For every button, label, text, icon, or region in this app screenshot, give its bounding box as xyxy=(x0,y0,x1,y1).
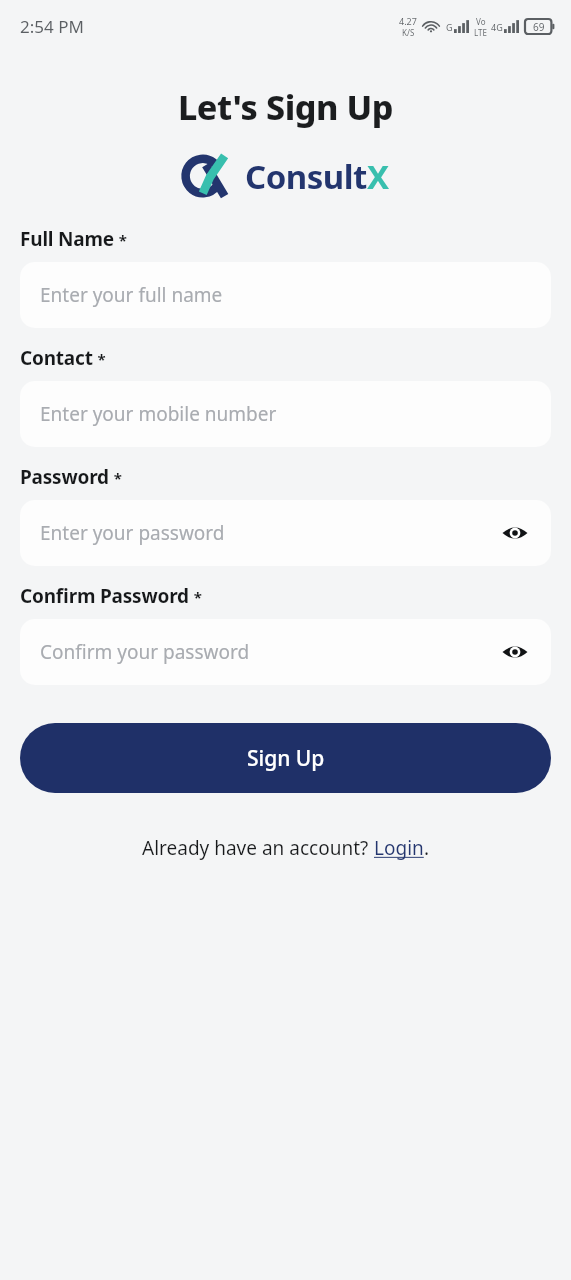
staticText: Vo xyxy=(476,16,486,27)
button[interactable]: Enter your mobile number xyxy=(20,381,551,447)
staticText: Confirm your password xyxy=(40,639,250,665)
staticText: Login xyxy=(374,835,424,861)
staticText: Full Name * xyxy=(20,226,127,252)
button[interactable]: Sign Up xyxy=(20,723,551,793)
staticText: Enter your password xyxy=(40,520,225,546)
button[interactable]: Enter your full name xyxy=(20,262,551,328)
button[interactable]: Confirm your password xyxy=(20,619,551,685)
staticText: Let's Sign Up xyxy=(0,84,571,130)
staticText: ConsultX xyxy=(245,154,389,199)
staticText: 2:54 PM xyxy=(20,15,84,38)
staticText: Enter your mobile number xyxy=(40,401,277,427)
button[interactable]: Show password xyxy=(497,515,533,551)
staticText: 4.27 xyxy=(399,15,417,27)
button[interactable]: Login xyxy=(374,835,424,861)
staticText: Password * xyxy=(20,464,122,490)
staticText: Already have an account? xyxy=(142,835,374,861)
staticText: Enter your full name xyxy=(40,282,223,308)
staticText: LTE xyxy=(474,27,487,38)
staticText: K/S xyxy=(402,27,415,38)
button[interactable]: Enter your password xyxy=(20,500,551,566)
staticText: Sign Up xyxy=(247,744,325,773)
staticText: G xyxy=(446,21,453,33)
staticText: 69 xyxy=(533,20,545,34)
staticText: Confirm Password * xyxy=(20,583,202,609)
button[interactable]: Show password xyxy=(497,634,533,670)
staticText: 4G xyxy=(491,21,503,33)
staticText: Contact * xyxy=(20,345,106,371)
staticText: . xyxy=(424,835,430,861)
